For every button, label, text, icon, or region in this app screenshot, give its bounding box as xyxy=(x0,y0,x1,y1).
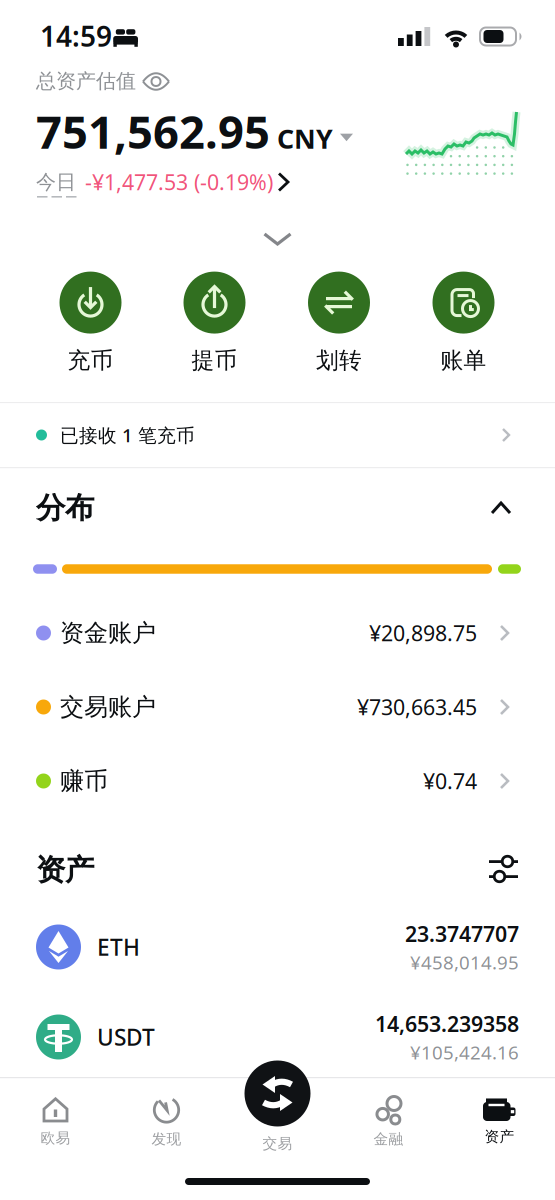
staticText: 发现 xyxy=(151,1130,181,1148)
button[interactable]: 提币 xyxy=(183,272,245,374)
staticText: -¥1,477.53 (-0.19%) xyxy=(85,168,273,196)
staticText: 已接收 1 笔充币 xyxy=(60,423,195,447)
staticText: ¥20,898.75 xyxy=(369,619,477,647)
button[interactable]: 充币 xyxy=(59,272,121,374)
staticText: 分布 xyxy=(36,490,94,526)
staticText: 14,653.239358 xyxy=(375,1009,519,1038)
staticText: 总资产估值 xyxy=(36,69,136,93)
button[interactable]: 隐藏总资产 xyxy=(142,72,170,90)
staticText: 账单 xyxy=(440,347,486,374)
staticText: 今日 xyxy=(36,170,76,194)
button[interactable]: 751,562.95 xyxy=(36,101,353,161)
staticText: ¥730,663.45 xyxy=(357,693,477,721)
staticText: ¥0.74 xyxy=(423,767,477,795)
button[interactable]: ETH xyxy=(0,902,555,992)
staticText: 欧易 xyxy=(40,1129,70,1147)
button[interactable]: 收起分布 xyxy=(490,501,511,514)
staticText: ¥105,424.16 xyxy=(410,1040,519,1065)
staticText: CNY xyxy=(277,121,333,156)
staticText: 交易账户 xyxy=(60,692,156,722)
button[interactable]: 今日 xyxy=(36,167,289,197)
button[interactable]: USDT xyxy=(0,992,555,1082)
button[interactable]: 收起 xyxy=(263,232,292,245)
staticText: 提币 xyxy=(191,347,237,374)
staticText: 充币 xyxy=(67,347,113,374)
staticText: 资产 xyxy=(484,1127,514,1145)
button[interactable]: 赚币 xyxy=(0,744,555,818)
staticText: 金融 xyxy=(373,1130,403,1148)
staticText: ETH xyxy=(97,932,140,962)
button[interactable]: 资产 xyxy=(454,1090,544,1154)
staticText: 划转 xyxy=(316,347,362,374)
button[interactable]: 金融 xyxy=(343,1090,433,1154)
button[interactable]: 筛选资产 xyxy=(489,855,518,883)
button[interactable]: 交易 xyxy=(244,1060,310,1152)
staticText: ¥458,014.95 xyxy=(410,950,519,975)
button[interactable]: 账单 xyxy=(432,272,494,374)
staticText: 交易 xyxy=(262,1134,292,1152)
staticText: USDT xyxy=(97,1022,155,1052)
staticText: 赚币 xyxy=(60,766,108,796)
button[interactable]: 交易账户 xyxy=(0,670,555,744)
button[interactable]: 已接收 1 笔充币 xyxy=(0,403,555,466)
staticText: 14:59 xyxy=(40,17,112,55)
staticText: 资金账户 xyxy=(60,618,156,648)
staticText: 751,562.95 xyxy=(36,101,270,161)
button[interactable]: 欧易 xyxy=(10,1090,100,1154)
staticText: 23.3747707 xyxy=(405,919,519,948)
staticText: 资产 xyxy=(36,852,94,888)
button[interactable]: 发现 xyxy=(121,1090,211,1154)
button[interactable]: 资金账户 xyxy=(0,596,555,670)
button[interactable]: 划转 xyxy=(308,272,370,374)
